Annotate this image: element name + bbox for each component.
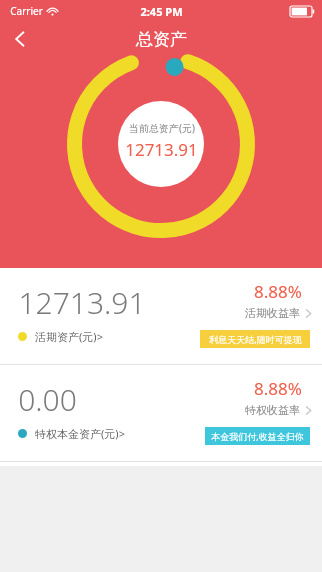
button[interactable]: 12713.91 xyxy=(0,268,322,364)
staticText: 本金我们付,收益全归你 xyxy=(211,430,304,442)
staticText: 当前总资产(元) xyxy=(129,121,195,135)
staticText: 活期资产(元)> xyxy=(35,329,103,344)
staticText: 12713.91 xyxy=(18,282,146,323)
staticText: 0.00 xyxy=(18,379,77,420)
staticText: 利息天天结,随时可提现 xyxy=(209,333,302,345)
button[interactable]: 0.00 xyxy=(0,365,322,461)
staticText: 特权收益率 xyxy=(245,403,300,417)
button[interactable]: Back xyxy=(0,22,40,56)
staticText: 总资产 xyxy=(136,29,187,50)
staticText: Carrier xyxy=(10,4,43,18)
staticText: 8.88% xyxy=(254,280,302,303)
staticText: 8.88% xyxy=(254,377,302,400)
staticText: 2:45 PM xyxy=(140,4,183,19)
staticText: 12713.91 xyxy=(125,138,198,161)
staticText: 特权本金资产(元)> xyxy=(35,426,125,441)
staticText: 活期收益率 xyxy=(245,306,300,320)
